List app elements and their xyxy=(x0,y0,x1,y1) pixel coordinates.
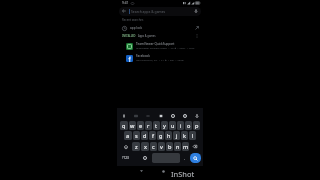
staticText: 9:41 xyxy=(122,1,129,5)
button[interactable]: Clipboard xyxy=(119,111,128,120)
button[interactable]: f xyxy=(149,131,156,140)
staticText: z xyxy=(135,143,138,151)
button[interactable]: TeamViewer QuickSupport xyxy=(117,40,203,52)
button[interactable]: Home xyxy=(159,167,167,175)
button[interactable]: Emoji xyxy=(140,153,150,163)
button[interactable]: v xyxy=(158,142,165,151)
staticText: j xyxy=(176,132,178,140)
button[interactable]: ?123 xyxy=(119,153,131,163)
staticText: l xyxy=(192,132,194,140)
button[interactable]: a xyxy=(124,131,132,140)
button[interactable]: Period xyxy=(181,153,188,163)
button[interactable]: Back xyxy=(120,7,128,15)
staticText: TeamViewer Germany GmbH • 4.5 ★ • 50M+ •… xyxy=(136,47,195,50)
button[interactable]: b xyxy=(166,142,173,151)
button[interactable]: Theme xyxy=(180,111,189,120)
staticText: Meta Platforms, Inc. • 4.1 ★ • 5B+ • Soc… xyxy=(136,59,184,62)
button[interactable]: z xyxy=(132,142,140,151)
staticText: i xyxy=(180,122,182,130)
staticText: Recent searches xyxy=(122,18,144,22)
staticText: d xyxy=(143,132,147,140)
staticText: s xyxy=(135,132,138,140)
staticText: INSTALLED xyxy=(122,34,136,38)
button[interactable]: Voice input xyxy=(192,111,201,120)
button[interactable]: g xyxy=(157,131,164,140)
button[interactable]: Shift xyxy=(120,142,131,151)
staticText: g xyxy=(159,132,163,140)
button[interactable]: More options xyxy=(195,33,199,39)
button[interactable]: app lock xyxy=(117,24,203,32)
button[interactable]: Facebook xyxy=(117,52,203,64)
button[interactable]: k xyxy=(181,131,188,140)
staticText: Apps & games xyxy=(138,34,156,38)
staticText: a xyxy=(126,132,130,140)
button[interactable]: q xyxy=(120,121,128,130)
button[interactable]: m xyxy=(182,142,189,151)
button[interactable]: u xyxy=(169,121,176,130)
button[interactable]: h xyxy=(165,131,172,140)
button[interactable]: t xyxy=(153,121,160,130)
staticText: TeamViewer QuickSupport xyxy=(136,42,175,46)
button[interactable]: Voice search xyxy=(192,7,200,15)
staticText: InShot xyxy=(171,169,195,179)
staticText: f xyxy=(152,132,154,140)
button[interactable]: Backspace xyxy=(190,142,200,151)
button[interactable]: Settings xyxy=(168,111,177,120)
staticText: u xyxy=(171,122,175,130)
staticText: v xyxy=(160,143,163,151)
staticText: m xyxy=(183,143,189,151)
staticText: q xyxy=(122,122,126,130)
button[interactable]: e xyxy=(137,121,144,130)
staticText: y xyxy=(163,122,166,130)
staticText: ?123 xyxy=(122,156,129,160)
button[interactable]: Layout xyxy=(156,111,165,120)
staticText: x xyxy=(144,143,147,151)
button[interactable]: Back xyxy=(137,167,145,175)
button[interactable]: Translate xyxy=(131,111,140,120)
staticText: t xyxy=(155,122,158,130)
staticText: . xyxy=(184,156,186,161)
button[interactable]: Space xyxy=(152,153,180,163)
staticText: h xyxy=(167,132,171,140)
staticText: k xyxy=(183,132,186,140)
button[interactable]: l xyxy=(189,131,196,140)
staticText: Facebook xyxy=(136,54,150,58)
button[interactable]: j xyxy=(173,131,180,140)
staticText: app lock xyxy=(130,26,143,30)
button[interactable]: w xyxy=(129,121,136,130)
button[interactable]: d xyxy=(141,131,148,140)
button[interactable]: Sticker xyxy=(143,111,152,120)
button[interactable]: s xyxy=(133,131,140,140)
button[interactable]: x xyxy=(141,142,149,151)
button[interactable]: i xyxy=(177,121,184,130)
button[interactable]: y xyxy=(161,121,168,130)
staticText: e xyxy=(139,122,143,130)
button[interactable]: r xyxy=(145,121,152,130)
button[interactable]: n xyxy=(174,142,181,151)
staticText: Search apps & games xyxy=(131,9,166,14)
staticText: b xyxy=(168,143,172,151)
button[interactable]: o xyxy=(185,121,192,130)
button[interactable]: p xyxy=(193,121,200,130)
staticText: o xyxy=(187,122,191,130)
button[interactable]: Search xyxy=(190,153,201,163)
button[interactable]: c xyxy=(150,142,157,151)
staticText: c xyxy=(152,143,155,151)
staticText: p xyxy=(195,122,199,130)
staticText: n xyxy=(176,143,180,151)
staticText: r xyxy=(147,122,150,130)
staticText: w xyxy=(130,122,135,130)
